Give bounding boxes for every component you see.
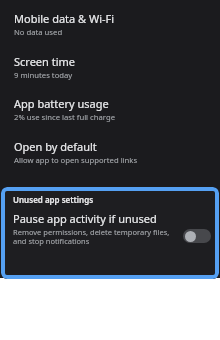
button[interactable]: App battery usage [0,96,220,126]
button[interactable] [183,229,211,243]
staticText: Pause app activity if unused [13,211,157,226]
staticText: Mobile data & Wi‑Fi [14,11,115,26]
staticText: Screen time [14,54,76,69]
button[interactable]: Open by default [0,139,220,169]
button[interactable]: Pause app activity if unused [1,211,219,253]
button[interactable]: Mobile data & Wi‑Fi [0,11,220,41]
staticText: 9 minutes today [14,70,73,80]
button[interactable]: Screen time [0,54,220,84]
staticText: Unused app settings [13,194,94,205]
staticText: Open by default [14,139,97,154]
staticText: No data used [14,27,63,37]
staticText: App battery usage [14,96,109,111]
staticText: Allow app to open supported links [14,155,138,165]
staticText: 2% use since last full charge [14,112,116,122]
staticText: Remove permissions, delete temporary fil… [13,227,170,247]
